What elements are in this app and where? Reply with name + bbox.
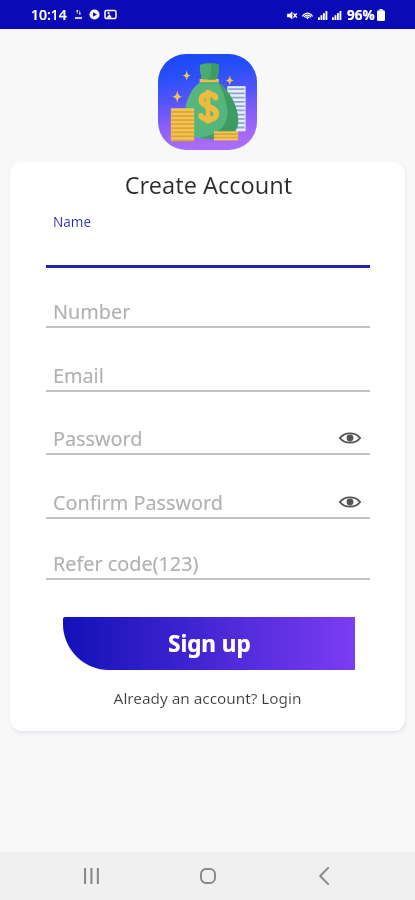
button[interactable]: Recent apps [67,852,115,900]
button[interactable]: Confirm Password [46,488,370,519]
button[interactable]: Refer code(123) [46,549,370,580]
staticText: Password [53,425,355,452]
button[interactable]: Already an account? Login [10,688,405,709]
staticText: Number [53,298,377,325]
staticText: Sign up [168,628,251,659]
button[interactable]: Number [46,297,370,328]
button[interactable]: Sign up [63,617,355,670]
staticText: Name [53,213,92,231]
staticText: Confirm Password [53,489,355,516]
button[interactable]: Back [300,852,348,900]
staticText: Refer code(123) [53,550,377,577]
button[interactable]: Email [46,361,370,392]
button[interactable]: Home [184,852,232,900]
staticText: Create Account [11,169,405,201]
staticText: Email [53,362,377,389]
button[interactable]: Password [46,424,370,455]
button[interactable]: Name [46,222,370,268]
staticText: 10:14 [31,5,67,24]
staticText: 96% [347,6,375,24]
